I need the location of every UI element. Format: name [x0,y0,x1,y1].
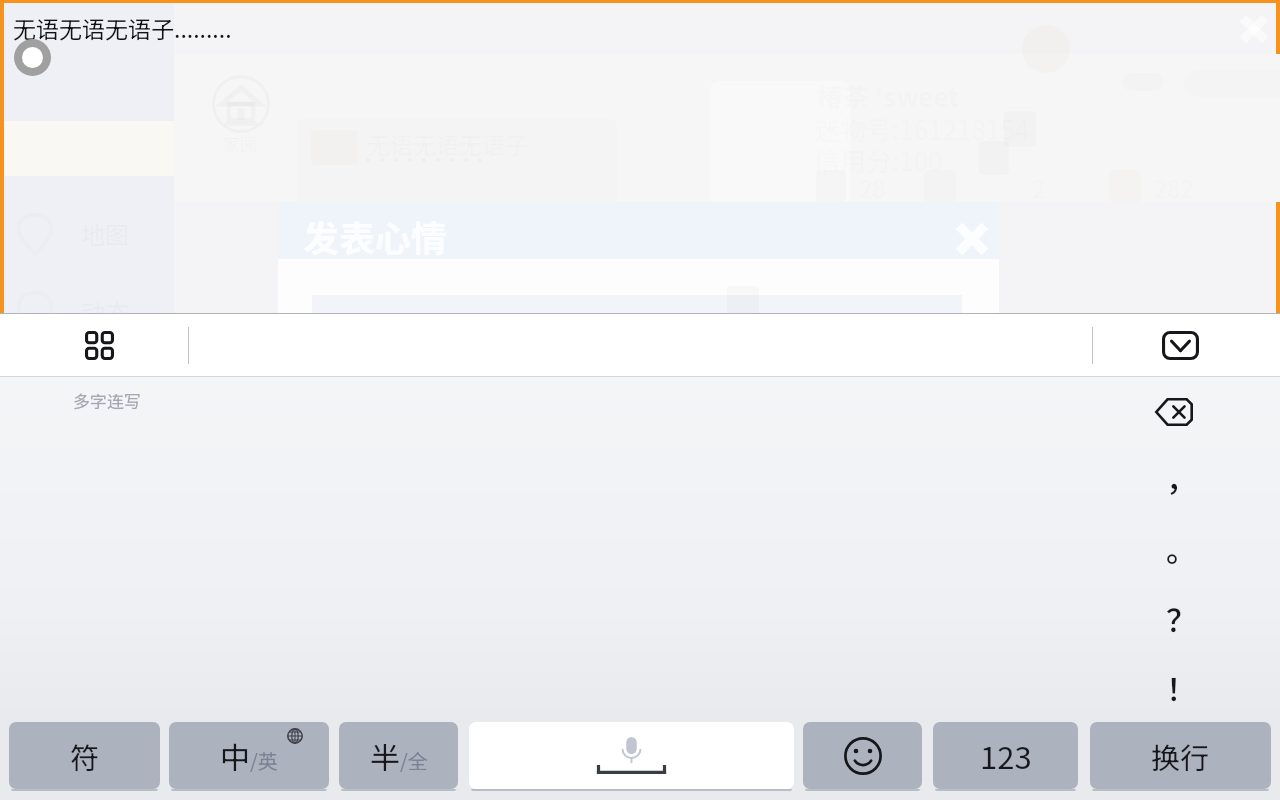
button[interactable]: 中 [169,722,329,789]
staticText: /全 [400,746,428,775]
staticText: 无语无语无语子......... [13,11,232,44]
staticText: 半 [370,734,400,777]
staticText: /英 [250,746,278,775]
staticText: ！ [1166,665,1197,710]
staticText: ， [1166,455,1197,500]
button[interactable]: ！ [1152,661,1210,713]
staticText: ？ [1166,596,1197,641]
button[interactable]: ， [1152,451,1210,503]
staticText: 动态 [81,294,129,329]
staticText: 换行 [1151,735,1210,777]
other: Emoji [803,722,922,791]
button[interactable]: 。 [1152,522,1210,574]
staticText: 123 [980,733,1032,778]
button[interactable]: 符 [9,722,160,789]
button[interactable] [803,722,922,789]
staticText: 多字连写 [73,388,141,413]
staticText: 符 [70,735,100,777]
button[interactable]: 123 [933,722,1078,789]
button[interactable]: Keyboard layouts [67,322,132,368]
other: Space / voice input [469,722,794,791]
staticText: 。 [1166,526,1197,571]
button[interactable] [469,722,794,789]
staticText: 中 [220,734,250,777]
button[interactable]: 换行 [1090,722,1271,789]
staticText: 发表心情 [303,210,448,262]
button[interactable]: Backspace [1146,389,1202,435]
button[interactable]: Hide keyboard [1148,322,1212,368]
button[interactable]: Close [946,213,998,265]
button[interactable]: ？ [1152,592,1210,644]
button[interactable]: Handwriting input area [0,377,1280,720]
button[interactable]: 半 [339,722,458,789]
